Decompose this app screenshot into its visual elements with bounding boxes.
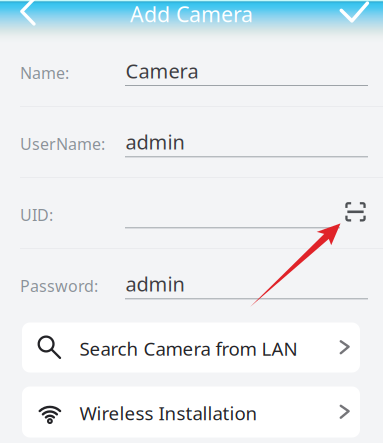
button[interactable]: Wireless Installation [22,386,360,437]
staticText: Password: [20,275,98,296]
staticText: Camera [125,57,198,84]
staticText: Add Camera [130,0,253,28]
staticText: Search Camera from LAN [79,336,297,361]
staticText: Name: [20,62,69,83]
button[interactable]: Search Camera from LAN [22,322,360,372]
staticText: UID: [20,204,53,225]
staticText: admin [125,270,184,297]
staticText: UserName: [20,133,105,154]
button[interactable]: Back [6,0,50,28]
button[interactable]: Scan QR code [338,197,372,227]
staticText: Wireless Installation [79,401,257,425]
staticText: admin [125,128,184,155]
button[interactable]: Done [332,0,376,28]
